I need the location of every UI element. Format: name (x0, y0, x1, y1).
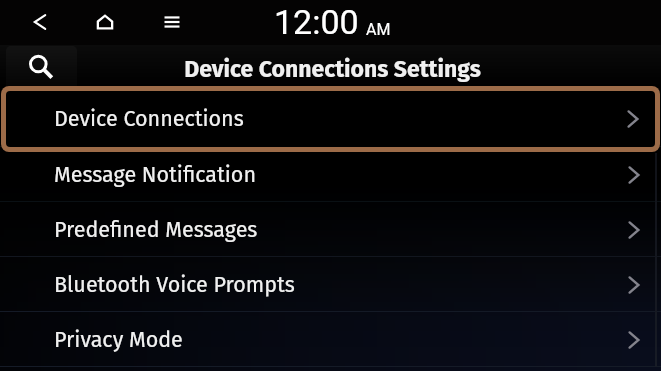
button[interactable]: Message Notification (0, 147, 661, 202)
button[interactable]: Device Connections (6, 91, 655, 147)
button[interactable]: Predefined Messages (0, 202, 661, 257)
button[interactable]: Home (90, 7, 120, 37)
staticText: 12:00 (274, 2, 359, 42)
staticText: Privacy Mode (54, 327, 183, 353)
button[interactable]: Search (6, 46, 77, 86)
staticText: Predefined Messages (54, 217, 258, 243)
button[interactable]: Back (25, 7, 55, 37)
staticText: Device Connections Settings (184, 55, 481, 83)
button[interactable]: Privacy Mode (0, 312, 661, 367)
button[interactable]: Bluetooth Voice Prompts (0, 257, 661, 312)
button[interactable]: Menu (157, 7, 187, 37)
staticText: AM (366, 20, 391, 39)
staticText: Device Connections (54, 107, 244, 133)
staticText: Bluetooth Voice Prompts (54, 272, 295, 298)
staticText: Message Notification (54, 162, 256, 188)
button[interactable]: Device Connections (0, 92, 661, 147)
staticText: Device Connections (54, 106, 244, 132)
